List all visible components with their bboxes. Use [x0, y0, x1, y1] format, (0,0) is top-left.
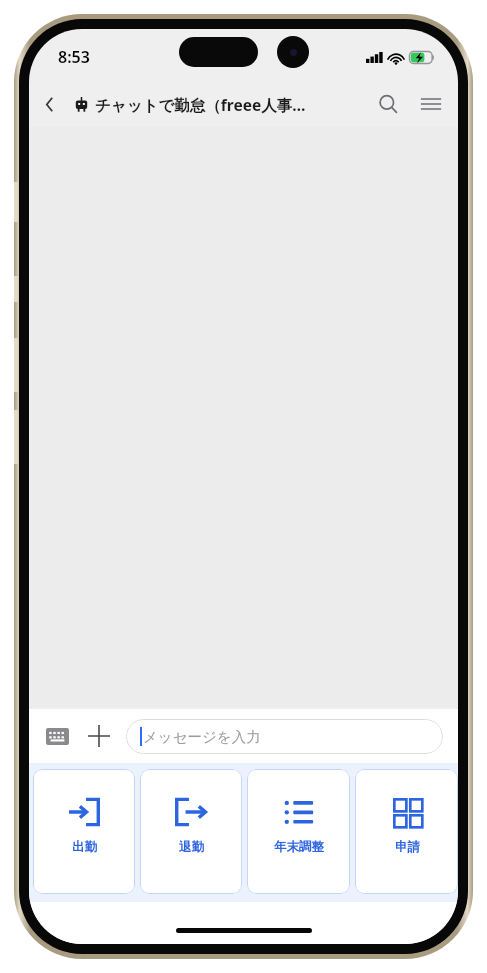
staticText: チャットで勤怠（freee人事… — [95, 94, 306, 115]
button[interactable]: 退勤 — [140, 769, 242, 894]
staticText: 申請 — [395, 839, 420, 855]
button[interactable]: Menu — [409, 82, 453, 126]
staticText: 年末調整 — [274, 839, 324, 855]
button[interactable]: Search — [367, 83, 409, 125]
button[interactable]: Keyboard — [41, 720, 73, 752]
button[interactable]: Back — [29, 84, 69, 124]
button[interactable]: 申請 — [355, 769, 458, 894]
button[interactable]: 年末調整 — [247, 769, 350, 894]
staticText: 8:53 — [58, 46, 90, 68]
button[interactable]: 出勤 — [33, 769, 135, 894]
button[interactable]: Add attachment — [83, 720, 115, 752]
staticText: 出勤 — [72, 839, 97, 855]
staticText: 退勤 — [179, 839, 204, 855]
staticText: メッセージを入力 — [143, 728, 261, 746]
button[interactable]: メッセージを入力 — [126, 719, 443, 754]
